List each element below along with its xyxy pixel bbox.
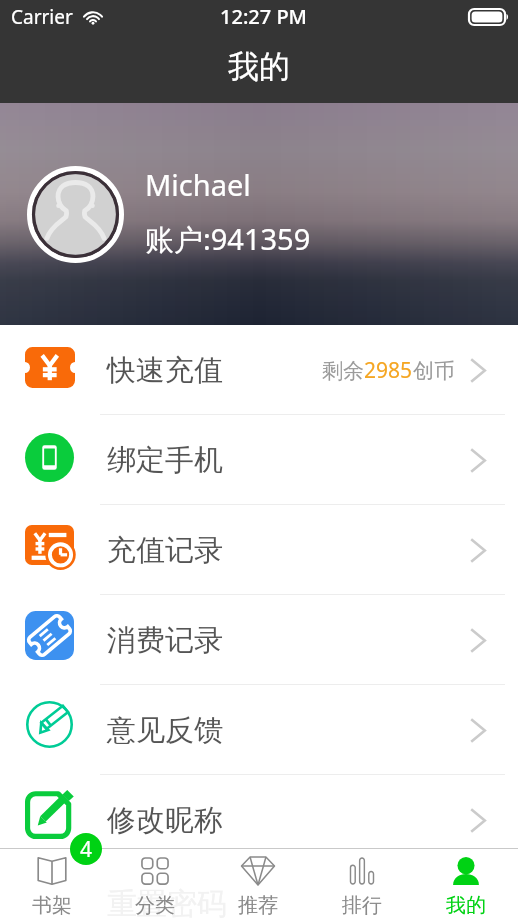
staticText: 绑定手机: [107, 442, 223, 479]
button[interactable]: 修改昵称: [0, 775, 518, 865]
button[interactable]: Shelf badge 4: [70, 833, 102, 865]
staticText: 4: [80, 835, 93, 864]
button[interactable]: 我的: [414, 848, 518, 920]
staticText: 2985: [364, 356, 413, 385]
staticText: 我的: [228, 47, 290, 86]
button[interactable]: 分类: [103, 848, 206, 920]
button[interactable]: 排行: [310, 848, 414, 920]
button[interactable]: 意见反馈: [0, 685, 518, 775]
staticText: 快速充值: [107, 352, 223, 389]
staticText: 12:27 PM: [220, 3, 307, 30]
staticText: Carrier: [11, 4, 73, 30]
staticText: 消费记录: [107, 622, 223, 659]
button[interactable]: 书架: [0, 848, 103, 920]
button[interactable]: 充值记录: [0, 505, 518, 595]
staticText: 排行: [342, 893, 382, 918]
button[interactable]: 快速充值: [0, 325, 518, 415]
staticText: 剩余: [322, 358, 364, 384]
button[interactable]: 消费记录: [0, 595, 518, 685]
staticText: Michael: [145, 165, 251, 204]
staticText: 我的: [446, 893, 486, 918]
button[interactable]: 绑定手机: [0, 415, 518, 505]
staticText: 书架: [32, 893, 72, 918]
staticText: 分类: [135, 893, 175, 918]
staticText: 推荐: [238, 893, 278, 918]
staticText: 意见反馈: [107, 712, 223, 749]
staticText: 账户:941359: [145, 219, 311, 259]
staticText: 充值记录: [107, 532, 223, 569]
staticText: 修改昵称: [107, 802, 223, 839]
staticText: 重置密码: [107, 885, 227, 920]
button[interactable]: 推荐: [206, 848, 310, 920]
staticText: 创币: [413, 358, 455, 384]
